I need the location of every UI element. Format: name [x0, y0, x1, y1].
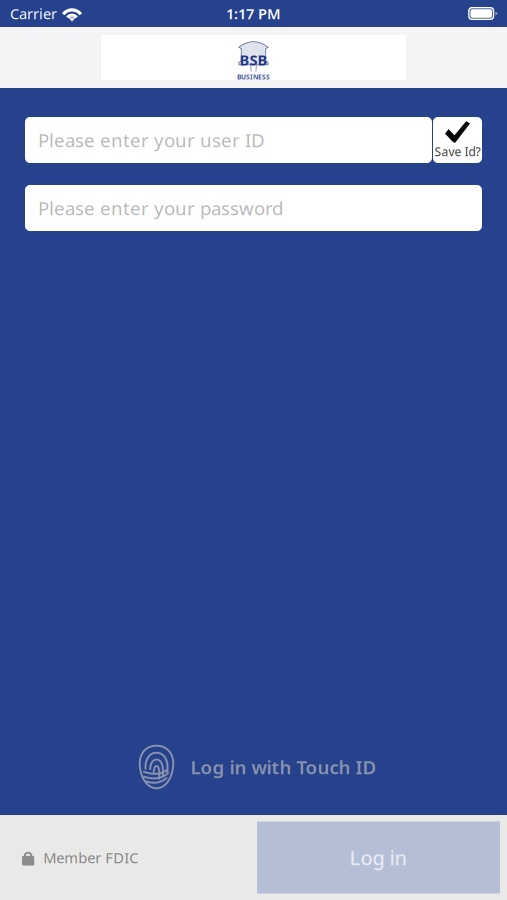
staticText: Log in — [349, 844, 407, 871]
staticText: BUSINESS — [237, 73, 270, 81]
staticText: Member FDIC — [43, 848, 138, 867]
staticText: BSB — [239, 50, 267, 70]
button[interactable]: Save Id? — [433, 117, 482, 163]
staticText: Save Id? — [434, 143, 480, 159]
button[interactable]: Log in with Touch ID — [126, 741, 380, 793]
staticText: 1:17 PM — [226, 4, 281, 23]
staticText: Please enter your password — [38, 196, 283, 220]
button[interactable]: Please enter your password — [25, 185, 482, 231]
staticText: Log in with Touch ID — [190, 755, 376, 779]
button[interactable]: Log in — [257, 821, 500, 893]
button[interactable]: Please enter your user ID — [25, 117, 432, 163]
staticText: Carrier — [10, 4, 57, 23]
staticText: Please enter your user ID — [38, 128, 265, 152]
